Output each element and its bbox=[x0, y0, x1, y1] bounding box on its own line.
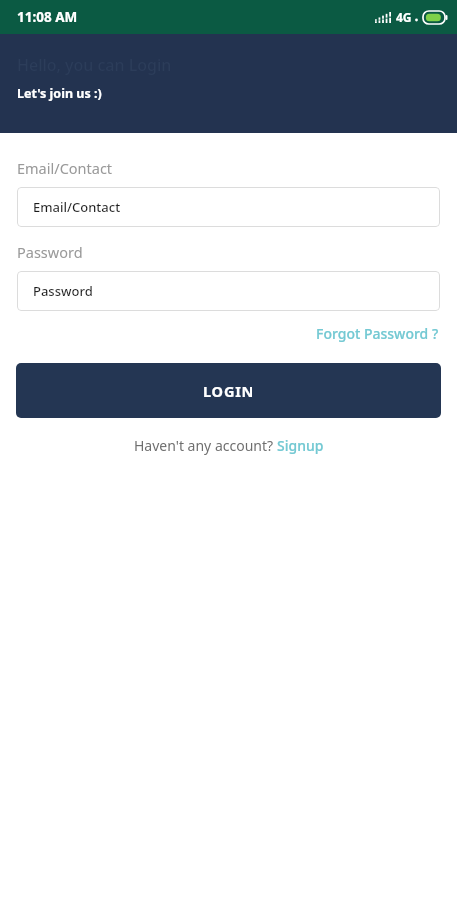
other: Signal strength bbox=[375, 12, 391, 23]
staticText: Password bbox=[33, 282, 93, 300]
button[interactable]: Forgot Password ? bbox=[314, 321, 441, 346]
staticText: Signup bbox=[277, 436, 324, 455]
staticText: Password bbox=[17, 242, 83, 262]
staticText: Forgot Password ? bbox=[316, 324, 439, 343]
button[interactable]: Signup bbox=[277, 436, 324, 455]
other: Battery bbox=[423, 11, 448, 24]
staticText: Let's join us :) bbox=[17, 85, 102, 102]
staticText: Haven't any account? bbox=[134, 436, 277, 455]
staticText: Email/Contact bbox=[33, 198, 121, 216]
staticText: 4G bbox=[396, 9, 412, 25]
staticText: Email/Contact bbox=[17, 158, 113, 178]
staticText: LOGIN bbox=[203, 381, 255, 401]
button[interactable]: Password bbox=[17, 271, 440, 311]
staticText: 11:08 AM bbox=[17, 8, 78, 26]
button[interactable]: Email/Contact bbox=[17, 187, 440, 227]
button[interactable]: LOGIN bbox=[16, 363, 441, 418]
